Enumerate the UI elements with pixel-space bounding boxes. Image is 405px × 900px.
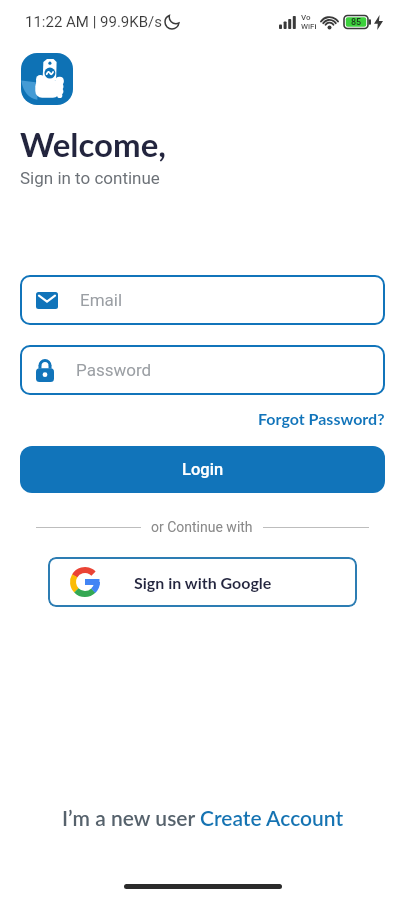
button[interactable]: I’m a new user Create Account	[0, 805, 405, 830]
button[interactable]: Forgot Password?	[258, 409, 385, 428]
staticText: 85	[351, 17, 362, 28]
staticText: 11:22 AM | 99.9KB/s	[25, 13, 162, 31]
button[interactable]: Email	[20, 275, 385, 325]
staticText: Email	[80, 290, 123, 310]
button[interactable]: Sign in with Google	[48, 557, 357, 607]
staticText: I’m a new user Create Account	[62, 805, 344, 830]
staticText: Welcome,	[20, 124, 167, 164]
staticText: Password	[76, 360, 152, 380]
button[interactable]: Login	[20, 446, 385, 493]
staticText: Login	[182, 460, 224, 479]
staticText: or Continue with	[151, 519, 253, 535]
staticText: Vo WiFi	[301, 13, 317, 31]
staticText: Sign in to continue	[20, 168, 160, 188]
button[interactable]: Password	[20, 345, 385, 395]
staticText: Sign in with Google	[134, 573, 272, 592]
